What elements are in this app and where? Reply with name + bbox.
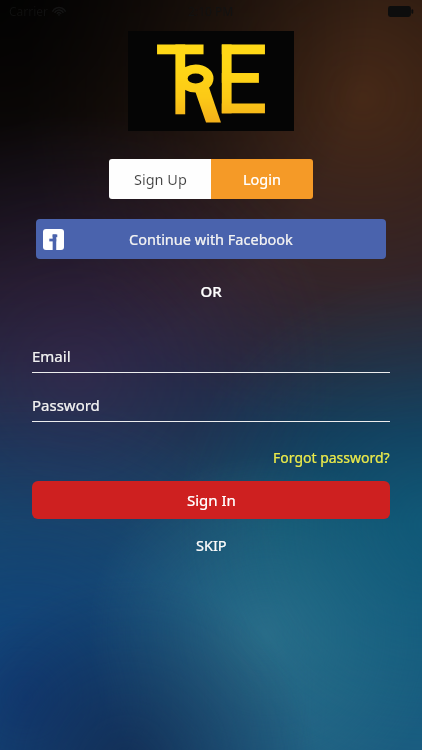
staticText: Sign In: [187, 490, 236, 510]
button[interactable]: Login: [211, 159, 313, 199]
button[interactable]: Email: [32, 346, 390, 373]
staticText: Continue with Facebook: [129, 229, 293, 249]
button[interactable]: Password: [32, 395, 390, 422]
staticText: OR: [0, 281, 422, 301]
button[interactable]: SKIP: [182, 532, 241, 558]
staticText: Login: [243, 169, 281, 189]
staticText: Password: [32, 395, 100, 415]
staticText: Carrier: [9, 3, 49, 19]
staticText: Email: [32, 346, 71, 366]
button[interactable]: Forgot password?: [273, 448, 390, 467]
button[interactable]: Continue with Facebook: [36, 219, 386, 259]
staticText: 2:10 PM: [188, 3, 234, 19]
staticText: SKIP: [196, 535, 227, 555]
staticText: Sign Up: [134, 169, 187, 189]
button[interactable]: Sign In: [32, 481, 390, 519]
button[interactable]: Sign Up: [109, 159, 211, 199]
